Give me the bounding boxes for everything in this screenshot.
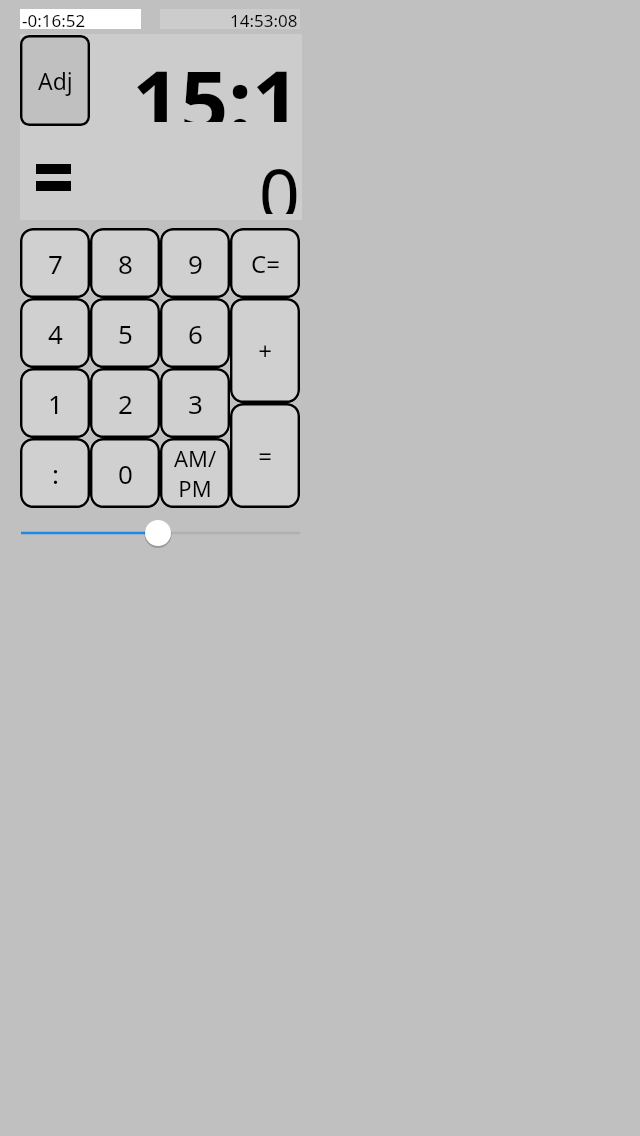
staticText: 1 bbox=[48, 386, 63, 421]
staticText: = bbox=[258, 439, 272, 472]
staticText: : bbox=[52, 456, 59, 491]
staticText: 8 bbox=[118, 246, 133, 281]
button[interactable]: C= bbox=[230, 228, 300, 298]
staticText: 5 bbox=[118, 316, 133, 351]
staticText: AM/PM bbox=[160, 443, 230, 503]
button[interactable]: 4 bbox=[20, 298, 90, 368]
staticText: 3 bbox=[188, 386, 203, 421]
button[interactable]: + bbox=[230, 298, 300, 403]
staticText: 9 bbox=[188, 246, 203, 281]
staticText: 0 bbox=[258, 144, 300, 214]
staticText: 6 bbox=[188, 316, 203, 351]
button[interactable]: Adjust value bbox=[10, 505, 310, 568]
staticText: + bbox=[258, 334, 272, 367]
staticText: C= bbox=[251, 247, 280, 280]
staticText: Adj bbox=[38, 65, 73, 96]
button[interactable]: 0 bbox=[90, 438, 160, 508]
staticText: 2 bbox=[118, 386, 133, 421]
button[interactable]: 3 bbox=[160, 368, 230, 438]
button[interactable]: 7 bbox=[20, 228, 90, 298]
button[interactable]: : bbox=[20, 438, 90, 508]
button[interactable]: 2 bbox=[90, 368, 160, 438]
button[interactable]: 8 bbox=[90, 228, 160, 298]
staticText: 4 bbox=[48, 316, 63, 351]
staticText: 15:10 bbox=[100, 42, 300, 122]
button[interactable]: 1 bbox=[20, 368, 90, 438]
button[interactable]: -0:16:52 bbox=[20, 9, 141, 29]
button[interactable]: 6 bbox=[160, 298, 230, 368]
button[interactable]: 9 bbox=[160, 228, 230, 298]
button[interactable]: = bbox=[230, 403, 300, 508]
button[interactable]: AM/PM bbox=[160, 438, 230, 508]
button[interactable]: 14:53:08 bbox=[160, 9, 300, 29]
staticText: 0 bbox=[118, 456, 133, 491]
staticText: -0:16:52 bbox=[22, 9, 86, 29]
button[interactable]: 5 bbox=[90, 298, 160, 368]
button[interactable]: Adj bbox=[20, 35, 90, 126]
staticText: 7 bbox=[48, 246, 63, 281]
staticText: 14:53:08 bbox=[230, 9, 298, 29]
